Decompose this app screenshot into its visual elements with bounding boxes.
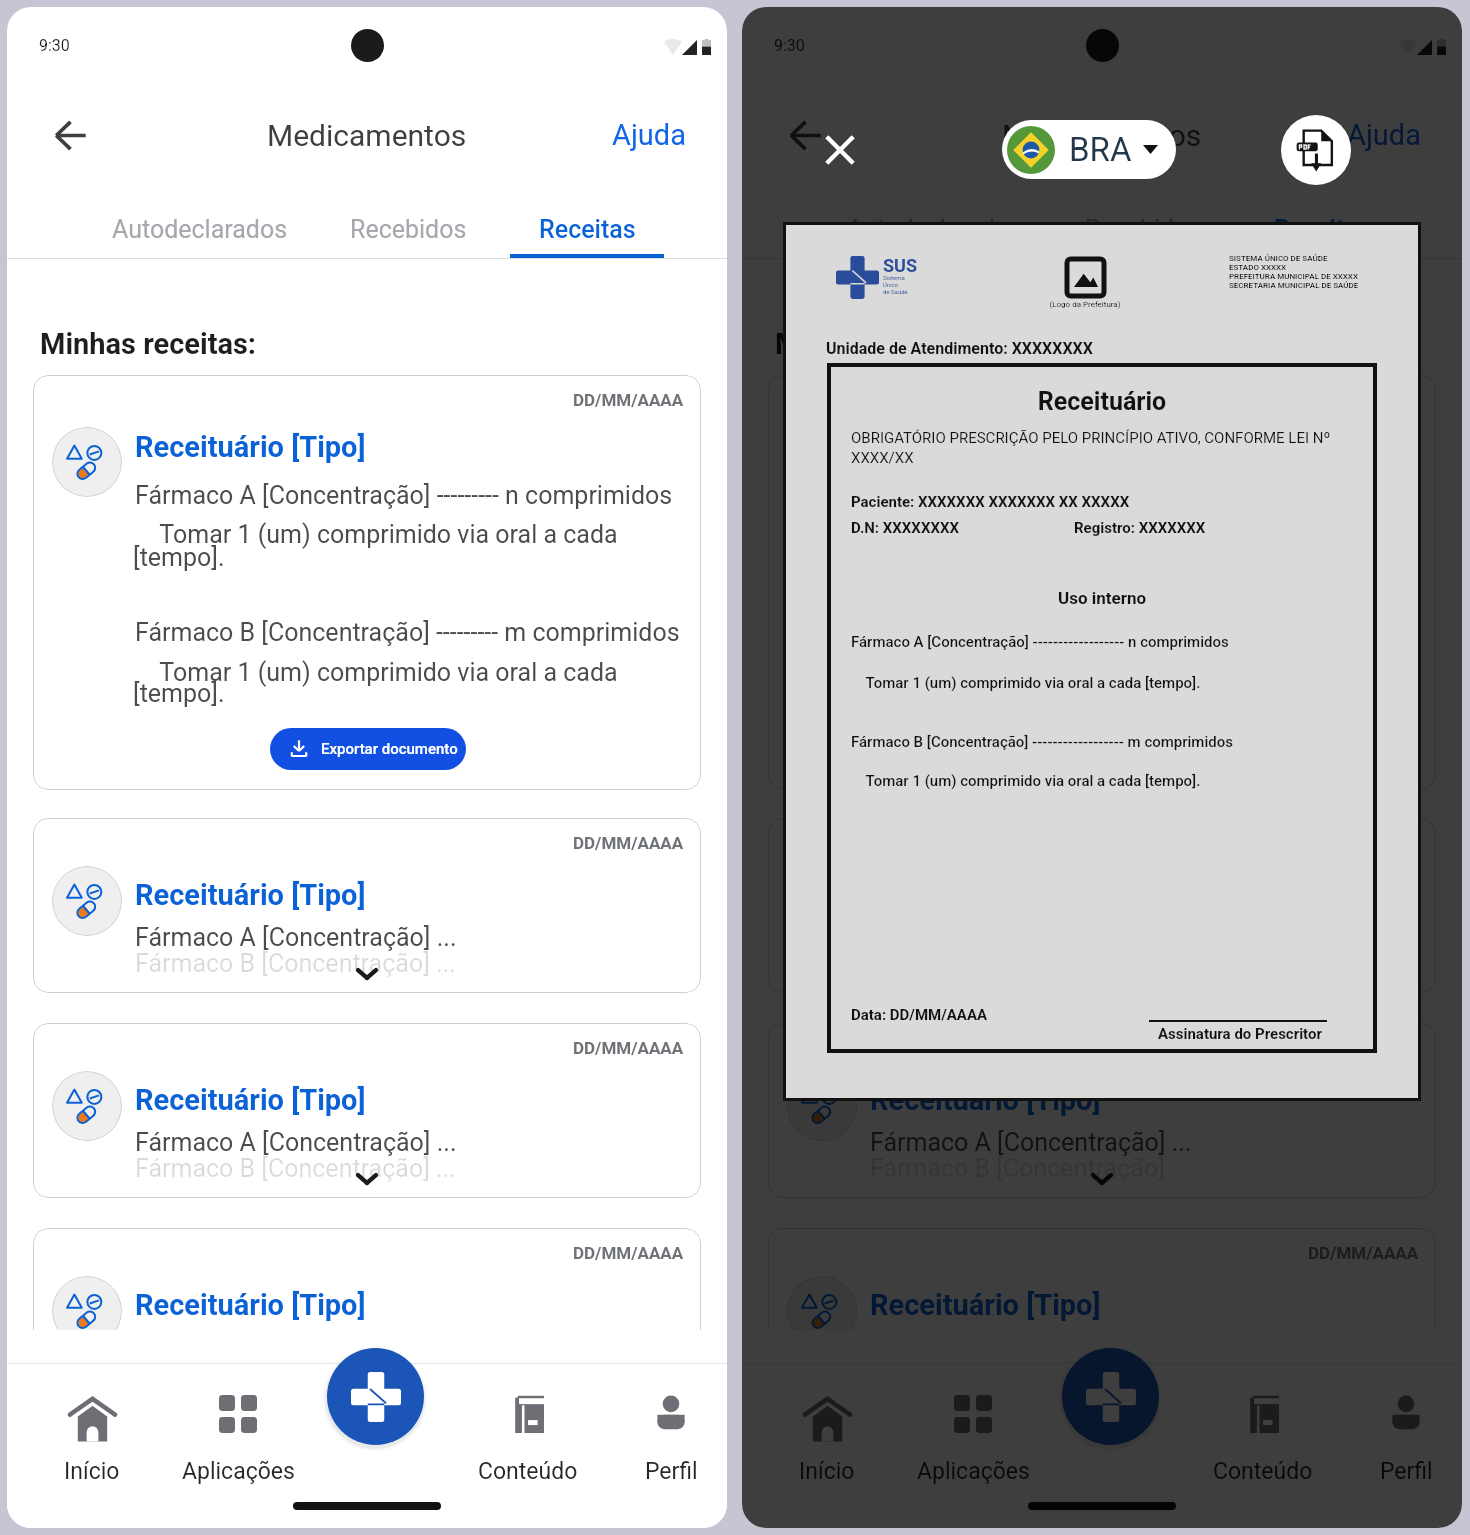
button[interactable]: DD/MM/AAAA xyxy=(33,818,701,993)
button[interactable]: Voltar xyxy=(38,103,102,167)
button[interactable]: DD/MM/AAAA xyxy=(33,375,701,790)
button[interactable]: Início xyxy=(22,1387,162,1487)
staticText: Receituário [Tipo] xyxy=(135,430,366,464)
button[interactable]: Adicionar xyxy=(327,1348,424,1445)
button[interactable]: Pré-visualização do receituário xyxy=(783,222,1421,1101)
staticText: Receituário [Tipo] xyxy=(870,1288,1101,1322)
staticText: Fármaco B [Concentração] ---------------… xyxy=(851,733,1233,751)
staticText: (Logo da Prefeitura) xyxy=(1035,300,1135,309)
staticText: Tomar 1 (um) comprimido via oral a cada xyxy=(135,658,618,687)
staticText: Data: DD/MM/AAAA xyxy=(851,1006,988,1024)
button[interactable]: Autodeclarados xyxy=(742,199,1128,259)
staticText: Autodeclarados xyxy=(112,215,288,244)
staticText: Fármaco B [Concentração] --------- m com… xyxy=(135,618,680,647)
staticText: Fármaco B [Concentração] ... xyxy=(135,1154,456,1183)
staticText: Receituário xyxy=(827,387,1377,416)
staticText: Fármaco A [Concentração] ... xyxy=(870,1128,1192,1157)
button[interactable]: DD/MM/AAAA xyxy=(768,818,1436,993)
staticText: ESTADO XXXXX xyxy=(1229,263,1287,272)
staticText: Tomar 1 (um) comprimido via oral a cada xyxy=(135,520,618,549)
button[interactable]: Baixar PDF xyxy=(1281,115,1351,185)
staticText: Autodeclarados xyxy=(847,215,1023,244)
staticText: Receituário [Tipo] xyxy=(870,430,1101,464)
staticText: Receituário [Tipo] xyxy=(135,1083,366,1117)
button[interactable]: Recebidos xyxy=(330,199,486,259)
button[interactable]: Exportar documento xyxy=(1005,728,1201,770)
staticText: Único xyxy=(883,281,899,288)
staticText: Receituário [Tipo] xyxy=(135,878,366,912)
staticText: SUS xyxy=(883,255,918,276)
staticText: Receituário [Tipo] xyxy=(870,1083,1101,1117)
button[interactable]: Ajuda xyxy=(1332,106,1436,164)
button[interactable]: Adicionar xyxy=(1062,1348,1159,1445)
staticText: Paciente: XXXXXXX XXXXXXX XX XXXXX xyxy=(851,493,1130,511)
button[interactable]: DD/MM/AAAA xyxy=(33,1023,701,1198)
staticText: Ajuda xyxy=(1347,118,1421,152)
button[interactable]: Aplicações xyxy=(903,1387,1043,1487)
staticText: Tomar 1 (um) comprimido via oral a cada xyxy=(870,658,1353,687)
staticText: Fármaco A [Concentração] ... xyxy=(135,1128,457,1157)
staticText: Minhas receitas: xyxy=(775,327,992,361)
staticText: Uso interno xyxy=(827,588,1377,608)
staticText: [tempo]. xyxy=(133,679,225,708)
staticText: DD/MM/AAAA xyxy=(1308,390,1419,410)
staticText: Aplicações xyxy=(917,1458,1030,1485)
staticText: Perfil xyxy=(1380,1458,1433,1485)
staticText: Fármaco B [Concentração] ... xyxy=(135,949,456,978)
staticText: Fármaco A [Concentração] --------- n com… xyxy=(135,481,673,510)
button[interactable]: Conteúdo xyxy=(1193,1387,1333,1487)
button[interactable]: Perfil xyxy=(1336,1387,1462,1487)
button[interactable]: DD/MM/AAAA xyxy=(768,375,1436,790)
button[interactable]: Voltar xyxy=(773,103,837,167)
button[interactable]: Ajuda xyxy=(597,106,701,164)
staticText: Início xyxy=(799,1458,855,1485)
staticText: Fármaco A [Concentração] ... xyxy=(135,923,457,952)
staticText: Aplicações xyxy=(182,1458,295,1485)
staticText: OBRIGATÓRIO PRESCRIÇÃO PELO PRINCÍPIO AT… xyxy=(851,429,1331,447)
button[interactable]: Receitas xyxy=(510,199,664,259)
button[interactable]: DD/MM/AAAA xyxy=(768,1023,1436,1198)
button[interactable]: Início xyxy=(757,1387,897,1487)
staticText: Registro: XXXXXXX xyxy=(1074,519,1206,537)
staticText: DD/MM/AAAA xyxy=(573,390,684,410)
button[interactable]: DD/MM/AAAA xyxy=(768,1228,1436,1330)
staticText: [tempo]. xyxy=(133,543,225,572)
button[interactable]: Conteúdo xyxy=(458,1387,598,1487)
staticText: BRA xyxy=(1069,130,1132,169)
staticText: Fármaco B [Concentração] ... xyxy=(870,1154,1191,1183)
staticText: Receituário [Tipo] xyxy=(135,1288,366,1322)
button[interactable]: Recebidos xyxy=(1065,199,1221,259)
staticText: SECRETARIA MUNICIPAL DE SAÚDE xyxy=(1229,281,1359,290)
staticText: DD/MM/AAAA xyxy=(573,1038,684,1058)
staticText: Tomar 1 (um) comprimido via oral a cada … xyxy=(851,772,1201,790)
button[interactable]: DD/MM/AAAA xyxy=(33,1228,701,1330)
staticText: [tempo]. xyxy=(868,679,960,708)
button[interactable]: Perfil xyxy=(601,1387,727,1487)
staticText: Recebidos xyxy=(1085,215,1202,244)
staticText: Conteúdo xyxy=(1213,1458,1313,1485)
staticText: Fármaco B [Concentração] --------- m com… xyxy=(870,618,1415,647)
button[interactable]: Exportar documento xyxy=(270,728,466,770)
staticText: Medicamentos xyxy=(267,118,467,153)
staticText: Exportar documento xyxy=(1056,740,1193,758)
staticText: Medicamentos xyxy=(1002,118,1202,153)
staticText: Receitas xyxy=(1274,215,1371,244)
staticText: DD/MM/AAAA xyxy=(573,1243,684,1263)
staticText: 9:30 xyxy=(39,36,70,55)
staticText: Início xyxy=(64,1458,120,1485)
staticText: SISTEMA ÚNICO DE SAÚDE xyxy=(1229,254,1328,263)
staticText: Ajuda xyxy=(612,118,686,152)
staticText: PREFEITURA MUNICIPAL DE XXXXX xyxy=(1229,272,1358,281)
button[interactable]: Aplicações xyxy=(168,1387,308,1487)
staticText: D.N: XXXXXXXX xyxy=(851,519,959,537)
staticText: Sistema xyxy=(883,274,905,281)
button[interactable]: Receitas xyxy=(1245,199,1399,259)
staticText: de Saúde xyxy=(883,288,908,295)
staticText: Perfil xyxy=(645,1458,698,1485)
button[interactable]: Autodeclarados xyxy=(7,199,393,259)
button[interactable]: Fechar xyxy=(814,124,866,176)
button[interactable]: BRA xyxy=(1002,120,1176,179)
